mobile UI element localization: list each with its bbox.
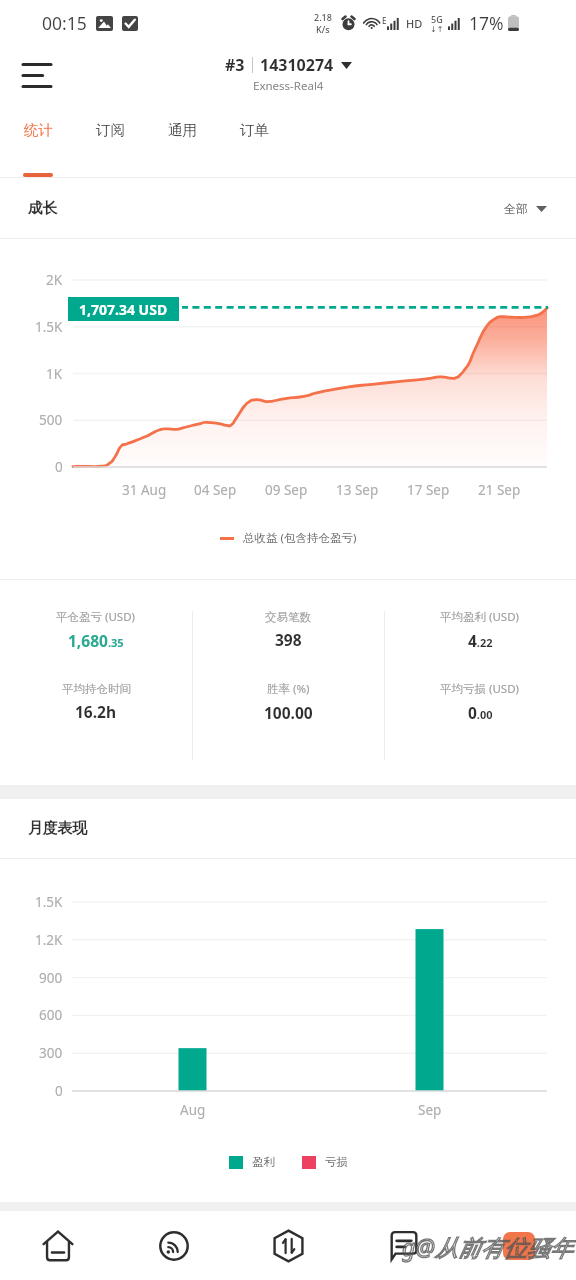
button[interactable]: Profile: [461, 1211, 576, 1280]
staticText: 04 Sep: [194, 481, 237, 499]
staticText: 平仓盈亏 (USD): [56, 609, 136, 625]
staticText: E: [382, 15, 387, 26]
staticText: 全部: [504, 201, 528, 216]
staticText: 成长: [28, 199, 58, 218]
staticText: 平均盈利 (USD): [440, 609, 520, 625]
staticText: 31 Aug: [122, 481, 167, 499]
staticText: 0: [55, 458, 63, 476]
button[interactable]: 统计: [2, 103, 74, 177]
staticText: 600: [39, 1006, 63, 1024]
button[interactable]: Menu: [10, 48, 64, 102]
staticText: Sep: [418, 1101, 442, 1119]
staticText: 0: [55, 1082, 63, 1100]
staticText: 100.00: [264, 702, 313, 723]
staticText: 16.2h: [75, 701, 117, 722]
staticText: 通用: [168, 121, 197, 139]
staticText: #3: [225, 54, 245, 76]
button[interactable]: Home: [0, 1211, 116, 1280]
button[interactable]: 平均亏损 (USD): [384, 666, 576, 737]
button[interactable]: 平均盈利 (USD): [384, 594, 576, 665]
staticText: 2K: [46, 271, 63, 289]
staticText: 1.5K: [35, 318, 63, 336]
staticText: ɡ@从前有位骚年: [402, 1231, 573, 1262]
button[interactable]: Trade: [231, 1211, 346, 1280]
staticText: 盈利: [252, 1155, 275, 1169]
staticText: 统计: [24, 121, 53, 139]
button[interactable]: #3: [225, 54, 352, 94]
staticText: 总收益 (包含持仓盈亏): [243, 530, 357, 546]
button[interactable]: 订单: [218, 103, 290, 177]
staticText: 月度表现: [28, 819, 88, 838]
button[interactable]: 全部: [500, 195, 551, 222]
staticText: 09 Sep: [265, 481, 308, 499]
staticText: K/s: [316, 23, 330, 35]
staticText: HD: [406, 16, 423, 31]
staticText: 4.22: [468, 630, 493, 651]
staticText: 订阅: [96, 121, 125, 139]
staticText: 17%: [469, 11, 504, 35]
staticText: 2.18: [314, 11, 332, 23]
staticText: 398: [275, 629, 302, 650]
button[interactable]: 订阅: [74, 103, 146, 177]
staticText: 5G: [431, 13, 443, 25]
button[interactable]: 交易笔数: [192, 594, 384, 665]
button[interactable]: 胜率 (%): [192, 666, 384, 737]
staticText: 平均持仓时间: [62, 682, 131, 696]
staticText: 00:15: [42, 11, 87, 35]
staticText: 交易笔数: [265, 610, 311, 624]
staticText: 300: [39, 1044, 63, 1062]
staticText: ↓↑: [430, 25, 444, 34]
staticText: Aug: [180, 1101, 206, 1119]
staticText: 亏损: [325, 1155, 348, 1169]
staticText: 14310274: [260, 54, 334, 76]
staticText: Exness-Real4: [253, 78, 324, 94]
staticText: 21 Sep: [478, 481, 521, 499]
staticText: 胜率 (%): [267, 681, 310, 697]
button[interactable]: 平均持仓时间: [0, 666, 192, 737]
staticText: 订单: [240, 121, 269, 139]
staticText: 1,680.35: [68, 630, 124, 651]
staticText: 1.2K: [35, 931, 63, 949]
button[interactable]: 平仓盈亏 (USD): [0, 594, 192, 665]
staticText: 13 Sep: [336, 481, 379, 499]
staticText: 900: [39, 969, 63, 987]
staticText: 17 Sep: [407, 481, 450, 499]
staticText: 1,707.34 USD: [79, 300, 168, 319]
button[interactable]: Chat: [346, 1211, 461, 1280]
button[interactable]: 通用: [146, 103, 218, 177]
staticText: 平均亏损 (USD): [440, 681, 520, 697]
staticText: 1K: [46, 365, 63, 383]
staticText: 500: [39, 411, 63, 429]
staticText: 1.5K: [35, 893, 63, 911]
button[interactable]: Signals: [116, 1211, 231, 1280]
staticText: 0.00: [468, 702, 493, 723]
